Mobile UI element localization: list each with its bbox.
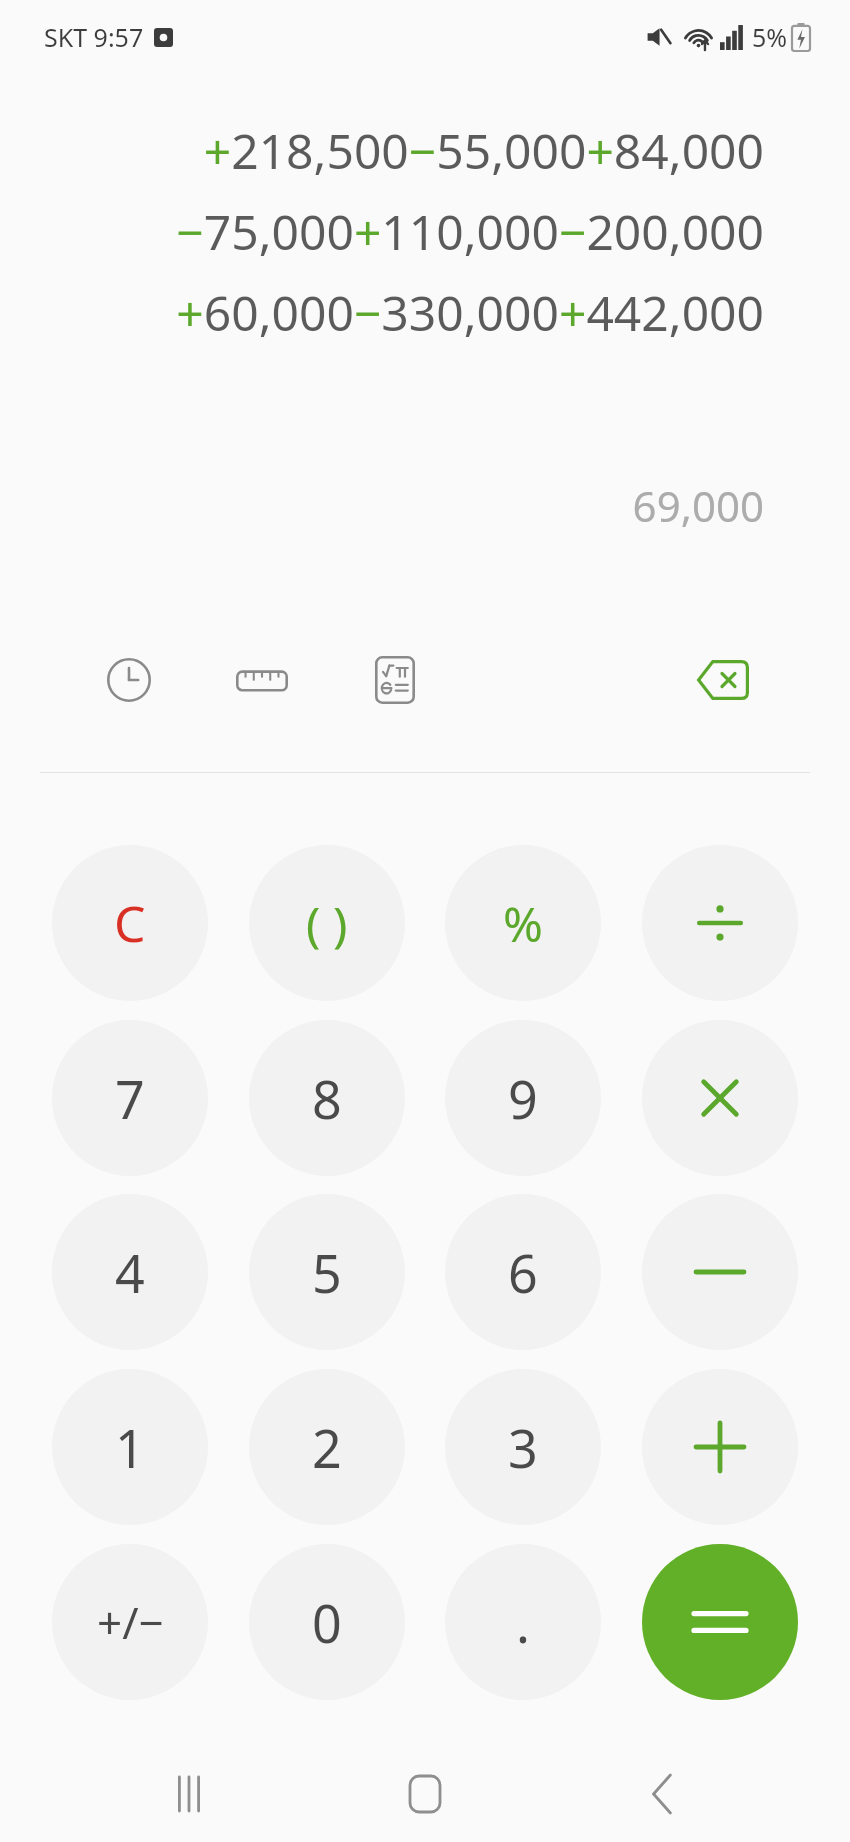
button[interactable]: 5 xyxy=(249,1194,405,1350)
staticText: +60,000−330,000+442,000 xyxy=(176,280,764,345)
button[interactable] xyxy=(642,1544,798,1700)
button[interactable] xyxy=(642,1369,798,1525)
button[interactable]: % xyxy=(445,845,601,1001)
button[interactable] xyxy=(642,1020,798,1176)
button[interactable]: 2 xyxy=(249,1369,405,1525)
staticText: 3 xyxy=(508,1412,538,1483)
button[interactable]: Unit converter xyxy=(222,640,302,720)
staticText: 6 xyxy=(508,1237,538,1308)
staticText: 1 xyxy=(115,1412,145,1483)
staticText: +/− xyxy=(97,1592,164,1652)
staticText: . xyxy=(516,1587,530,1658)
button[interactable]: Backspace xyxy=(682,640,762,720)
button[interactable]: 7 xyxy=(52,1020,208,1176)
staticText: ( ) xyxy=(306,891,348,956)
button[interactable]: 9 xyxy=(445,1020,601,1176)
button[interactable]: Home xyxy=(377,1746,473,1842)
button[interactable]: 6 xyxy=(445,1194,601,1350)
staticText: 5 xyxy=(312,1237,342,1308)
button[interactable]: C xyxy=(52,845,208,1001)
staticText: 2 xyxy=(312,1412,342,1483)
button[interactable] xyxy=(642,1194,798,1350)
button[interactable] xyxy=(642,845,798,1001)
staticText: % xyxy=(503,891,543,956)
button[interactable]: 3 xyxy=(445,1369,601,1525)
button[interactable]: Calculation history xyxy=(89,640,169,720)
button[interactable]: 1 xyxy=(52,1369,208,1525)
button[interactable]: 8 xyxy=(249,1020,405,1176)
button[interactable]: Recents xyxy=(141,1746,237,1842)
button[interactable]: Back xyxy=(614,1746,710,1842)
button[interactable]: +/− xyxy=(52,1544,208,1700)
staticText: +218,500−55,000+84,000 xyxy=(203,118,764,183)
button[interactable]: 4 xyxy=(52,1194,208,1350)
staticText: SKT 9:57 xyxy=(44,20,144,54)
staticText: C xyxy=(114,889,146,957)
staticText: −75,000+110,000−200,000 xyxy=(176,199,764,264)
staticText: 4 xyxy=(115,1237,145,1308)
staticText: 0 xyxy=(312,1587,342,1658)
button[interactable]: 0 xyxy=(249,1544,405,1700)
button[interactable]: . xyxy=(445,1544,601,1700)
staticText: 8 xyxy=(312,1063,342,1134)
staticText: 9 xyxy=(508,1063,538,1134)
staticText: 5% xyxy=(752,20,788,54)
button[interactable]: Scientific calculator xyxy=(355,640,435,720)
staticText: 69,000 xyxy=(632,477,764,534)
staticText: 7 xyxy=(115,1063,145,1134)
button[interactable]: ( ) xyxy=(249,845,405,1001)
